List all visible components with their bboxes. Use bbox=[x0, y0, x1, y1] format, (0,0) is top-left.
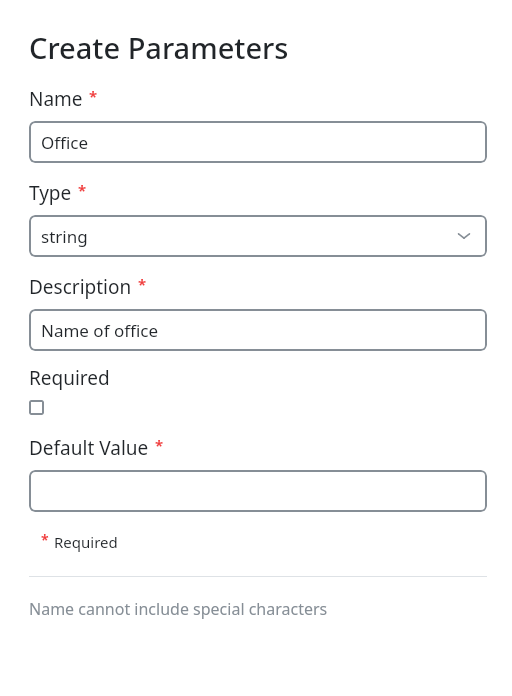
staticText: Required bbox=[54, 532, 118, 552]
staticText: Description bbox=[29, 274, 132, 300]
button[interactable] bbox=[29, 470, 487, 512]
staticText: Create Parameters bbox=[29, 28, 289, 67]
other: Open type dropdown bbox=[453, 225, 475, 247]
staticText: Type bbox=[29, 180, 72, 206]
staticText: Name of office bbox=[41, 319, 159, 342]
staticText: string bbox=[41, 225, 88, 248]
staticText: * bbox=[89, 86, 98, 106]
staticText: Required bbox=[29, 365, 110, 391]
button[interactable]: string bbox=[29, 215, 487, 257]
staticText: * bbox=[78, 180, 87, 200]
staticText: Default Value bbox=[29, 435, 149, 461]
button[interactable]: Office bbox=[29, 121, 487, 163]
staticText: Office bbox=[41, 131, 89, 154]
staticText: Name cannot include special characters bbox=[29, 598, 328, 620]
button[interactable]: Name of office bbox=[29, 309, 487, 351]
staticText: * bbox=[41, 530, 49, 549]
button[interactable]: Required checkbox bbox=[29, 400, 44, 415]
staticText: Name bbox=[29, 86, 83, 112]
staticText: * bbox=[155, 435, 164, 455]
staticText: * bbox=[138, 274, 147, 294]
